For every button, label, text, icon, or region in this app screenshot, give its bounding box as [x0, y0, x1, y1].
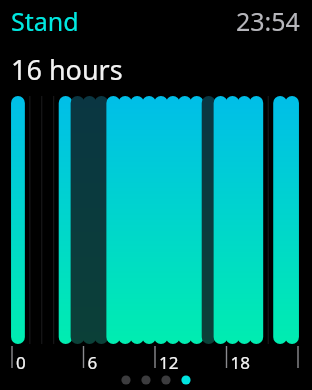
- button[interactable]: Stand activity chart, 16 hours: [0, 0, 312, 390]
